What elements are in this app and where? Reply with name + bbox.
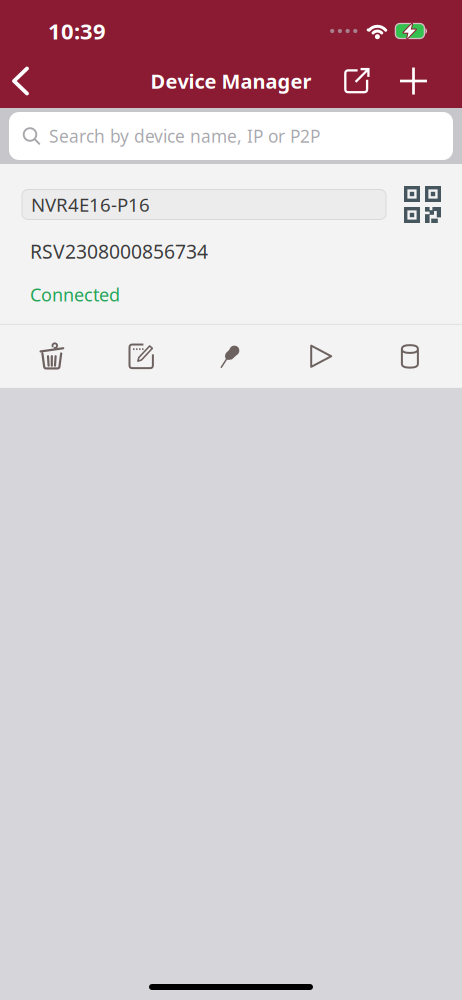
button[interactable] xyxy=(0,66,30,95)
staticText: NVR4E16-P16 xyxy=(31,192,150,217)
button[interactable] xyxy=(7,325,97,388)
staticText: RSV2308000856734 xyxy=(30,238,208,264)
button[interactable]: Search by device name, IP or P2P xyxy=(0,108,462,164)
button[interactable] xyxy=(399,66,428,95)
button[interactable]: NVR4E16-P16 xyxy=(22,189,386,219)
staticText: Device Manager xyxy=(150,67,311,95)
staticText: Connected xyxy=(30,282,120,307)
button[interactable] xyxy=(343,67,370,94)
staticText: 10:39 xyxy=(48,16,106,46)
button[interactable] xyxy=(186,325,276,388)
button[interactable] xyxy=(404,186,462,223)
button[interactable] xyxy=(97,325,186,388)
button[interactable] xyxy=(276,325,365,388)
staticText: Search by device name, IP or P2P xyxy=(49,124,320,148)
button[interactable] xyxy=(365,325,455,388)
